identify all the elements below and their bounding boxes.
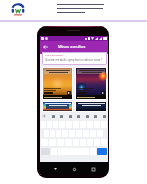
staticText: Minus occultus [58,44,86,49]
button[interactable]: Recents [89,165,97,173]
button[interactable]: Keyboard tool [93,114,97,118]
staticText: Quatte mirabilis symphonia videtur nova … [45,58,103,62]
button[interactable] [76,68,106,99]
button[interactable]: Keyboard tool [85,114,89,118]
button[interactable]: Enter [97,148,107,155]
button[interactable]: Keyboard tool [42,114,46,118]
button[interactable] [43,68,72,99]
button[interactable]: Tua interrogatio : [42,52,107,65]
button[interactable] [76,102,106,111]
button[interactable]: Keyboard tool [51,114,55,118]
button[interactable]: Back [51,165,59,173]
button[interactable]: Keyboard tool [59,114,63,118]
staticText: Tua interrogatio : [45,53,65,56]
button[interactable]: Home [70,165,78,173]
button[interactable]: Keyboard tool [68,114,72,118]
button[interactable] [43,102,72,111]
button[interactable]: Keyboard tool [102,114,106,118]
button[interactable]: Keyboard tool [76,114,80,118]
button[interactable]: Back [41,43,49,51]
